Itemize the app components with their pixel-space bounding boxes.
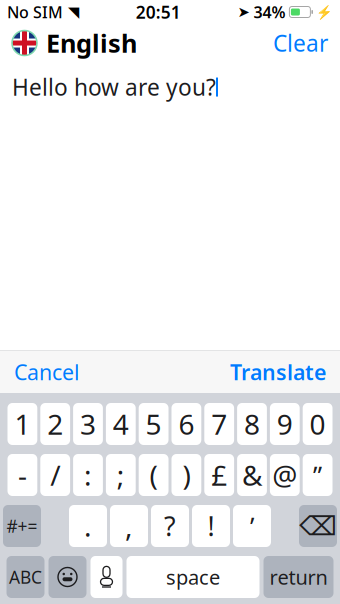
staticText: Clear — [273, 28, 328, 58]
staticText: 4 — [113, 405, 129, 443]
staticText: ! — [207, 508, 214, 544]
button[interactable]: 7 — [204, 403, 234, 445]
button[interactable]: quote — [303, 454, 332, 496]
staticText: £ — [211, 456, 227, 494]
staticText: 3 — [80, 405, 96, 443]
button[interactable]: pound — [204, 454, 234, 496]
button[interactable]: 1 — [7, 403, 37, 445]
button[interactable]: Clear — [273, 28, 328, 58]
staticText: 20:51 — [136, 0, 181, 23]
button[interactable]: space — [126, 556, 259, 598]
staticText: , — [125, 507, 133, 545]
button[interactable]: colon — [73, 454, 103, 496]
button[interactable]: 6 — [171, 403, 201, 445]
staticText: & — [242, 456, 262, 494]
button[interactable]: letters keyboard — [6, 556, 44, 598]
staticText: English — [46, 26, 137, 60]
staticText: 8 — [244, 405, 260, 443]
button[interactable]: Cancel — [0, 348, 94, 396]
staticText: ➤ — [237, 4, 249, 20]
button[interactable]: at sign — [270, 454, 300, 496]
staticText: space — [166, 564, 220, 590]
staticText: Cancel — [14, 358, 80, 386]
button[interactable]: 0 — [303, 403, 332, 445]
button[interactable]: apostrophe — [233, 505, 271, 547]
staticText: return — [269, 564, 327, 590]
staticText: - — [18, 456, 27, 494]
staticText: @ — [272, 456, 297, 494]
button[interactable]: 3 — [73, 403, 103, 445]
staticText: 0 — [310, 405, 326, 443]
staticText: ◥ — [63, 4, 79, 20]
staticText: 34% — [249, 1, 289, 23]
staticText: 2 — [47, 405, 63, 443]
staticText: ⚡ — [313, 3, 333, 21]
button[interactable]: 2 — [40, 403, 70, 445]
staticText: ) — [182, 456, 190, 494]
button[interactable]: Dictate — [90, 556, 122, 598]
button[interactable]: question mark — [151, 505, 189, 547]
button[interactable]: right parenthesis — [171, 454, 201, 496]
staticText: Translate — [230, 358, 326, 386]
staticText: ( — [150, 456, 158, 494]
staticText: 9 — [277, 405, 293, 443]
staticText: ⌫ — [299, 511, 337, 541]
staticText: No SIM — [7, 1, 63, 23]
button[interactable]: more symbols — [3, 505, 41, 547]
button[interactable]: ampersand — [237, 454, 267, 496]
staticText: Hello how are you? — [12, 72, 216, 102]
staticText: ; — [117, 456, 125, 494]
button[interactable]: Delete — [299, 505, 337, 547]
button[interactable]: 4 — [106, 403, 136, 445]
button[interactable]: 9 — [270, 403, 300, 445]
button[interactable]: English language — [12, 26, 137, 60]
staticText: ” — [313, 458, 322, 492]
button[interactable]: return — [263, 556, 333, 598]
button[interactable]: Emoji — [48, 556, 86, 598]
staticText: #+= — [6, 514, 37, 537]
staticText: . — [84, 507, 92, 545]
button[interactable]: Translate — [216, 348, 340, 396]
button[interactable]: hyphen — [7, 454, 37, 496]
staticText: ? — [164, 508, 176, 544]
staticText: ’ — [250, 509, 254, 543]
staticText: : — [84, 456, 92, 494]
button[interactable]: period — [69, 505, 107, 547]
button[interactable]: comma — [110, 505, 148, 547]
button[interactable]: left parenthesis — [139, 454, 168, 496]
staticText: 5 — [146, 405, 162, 443]
button[interactable]: 5 — [139, 403, 168, 445]
button[interactable]: slash — [40, 454, 70, 496]
staticText: 1 — [14, 405, 30, 443]
staticText: ABC — [9, 565, 42, 588]
staticText: / — [50, 456, 60, 494]
button[interactable]: 8 — [237, 403, 267, 445]
staticText: 7 — [211, 405, 227, 443]
button[interactable]: exclamation mark — [192, 505, 230, 547]
button[interactable]: semicolon — [106, 454, 136, 496]
staticText: 6 — [178, 405, 194, 443]
